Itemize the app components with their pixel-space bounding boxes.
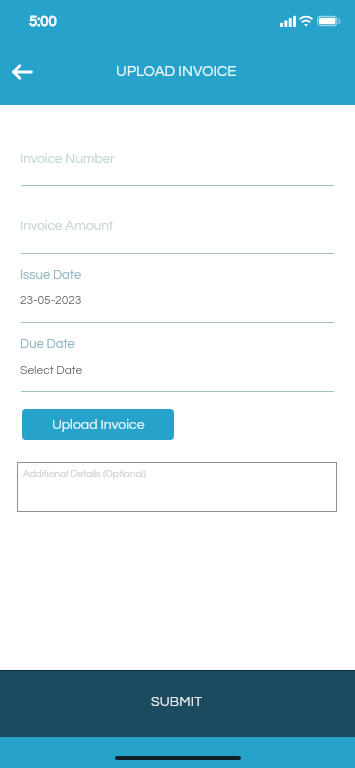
staticText: SUBMIT (151, 695, 203, 709)
staticText: 5:00 (29, 14, 57, 29)
staticText: Select Date (20, 364, 83, 376)
button[interactable]: Upload Invoice (22, 409, 174, 440)
button[interactable]: Back (1, 50, 43, 94)
staticText: Upload Invoice (52, 418, 145, 432)
button[interactable]: Additional Details (Optional) (17, 462, 337, 512)
staticText: Issue Date (20, 268, 82, 281)
staticText: Due Date (20, 337, 75, 350)
staticText: 23-05-2023 (20, 294, 82, 306)
staticText: Invoice Amount (20, 219, 114, 233)
staticText: UPLOAD INVOICE (116, 64, 237, 79)
staticText: Invoice Number (20, 152, 115, 166)
button[interactable]: SUBMIT (0, 670, 355, 737)
staticText: Additional Details (Optional) (23, 469, 146, 479)
